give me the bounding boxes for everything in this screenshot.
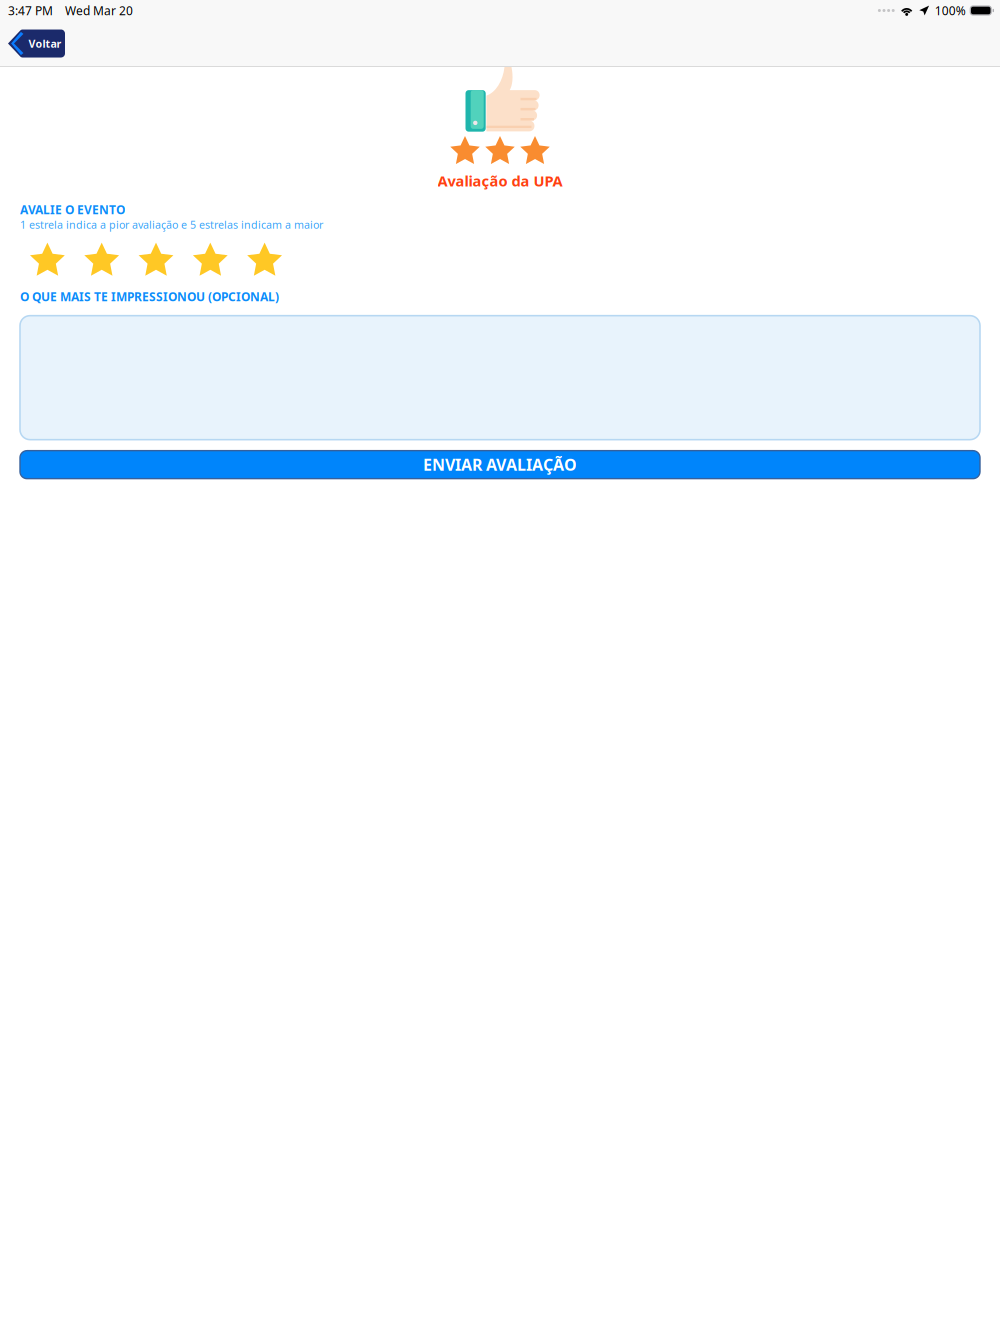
staticText: Avaliação da UPA xyxy=(437,171,562,190)
staticText: 1 estrela indica a pior avaliação e 5 es… xyxy=(20,217,323,232)
button[interactable]: ENVIAR AVALIAÇÃO xyxy=(20,451,980,479)
staticText: 3:47 PM xyxy=(8,2,53,18)
staticText: ENVIAR AVALIAÇÃO xyxy=(423,454,577,475)
staticText: O QUE MAIS TE IMPRESSIONOU (OPCIONAL) xyxy=(20,289,279,305)
staticText: 100% xyxy=(935,2,966,18)
staticText: Voltar xyxy=(28,36,61,51)
button[interactable]: Voltar xyxy=(8,29,65,57)
staticText: Wed Mar 20 xyxy=(65,2,133,18)
staticText: AVALIE O EVENTO xyxy=(20,201,125,217)
